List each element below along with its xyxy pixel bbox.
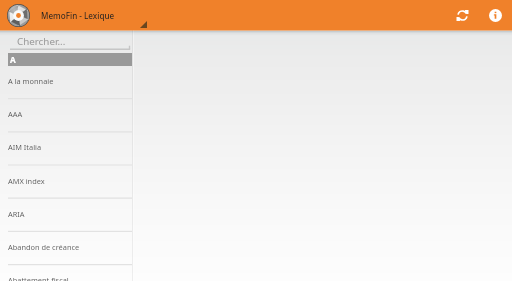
button[interactable]: Chercher... bbox=[0, 30, 132, 50]
button[interactable]: A bbox=[8, 53, 132, 66]
button[interactable]: AMX index bbox=[0, 166, 132, 199]
button[interactable]: Info bbox=[480, 0, 510, 30]
staticText: A la monnaie bbox=[8, 76, 54, 86]
staticText: A bbox=[10, 54, 16, 65]
staticText: MemoFin - Lexique bbox=[41, 10, 115, 21]
staticText: Chercher... bbox=[17, 35, 66, 48]
staticText: AAA bbox=[8, 109, 23, 119]
button[interactable]: A la monnaie bbox=[0, 66, 132, 99]
staticText: AIM Italia bbox=[8, 142, 42, 152]
button[interactable]: App icon bbox=[6, 3, 30, 27]
staticText: ARIA bbox=[8, 209, 25, 219]
button[interactable]: Abattement fiscal bbox=[0, 265, 132, 281]
staticText: AMX index bbox=[8, 176, 45, 186]
button[interactable]: AIM Italia bbox=[0, 132, 132, 165]
staticText: Abandon de créance bbox=[8, 242, 80, 252]
button[interactable]: Refresh bbox=[447, 0, 477, 30]
button[interactable]: ARIA bbox=[0, 199, 132, 232]
button[interactable]: AAA bbox=[0, 99, 132, 132]
staticText: Abattement fiscal bbox=[8, 275, 69, 281]
button[interactable]: Abandon de créance bbox=[0, 232, 132, 265]
